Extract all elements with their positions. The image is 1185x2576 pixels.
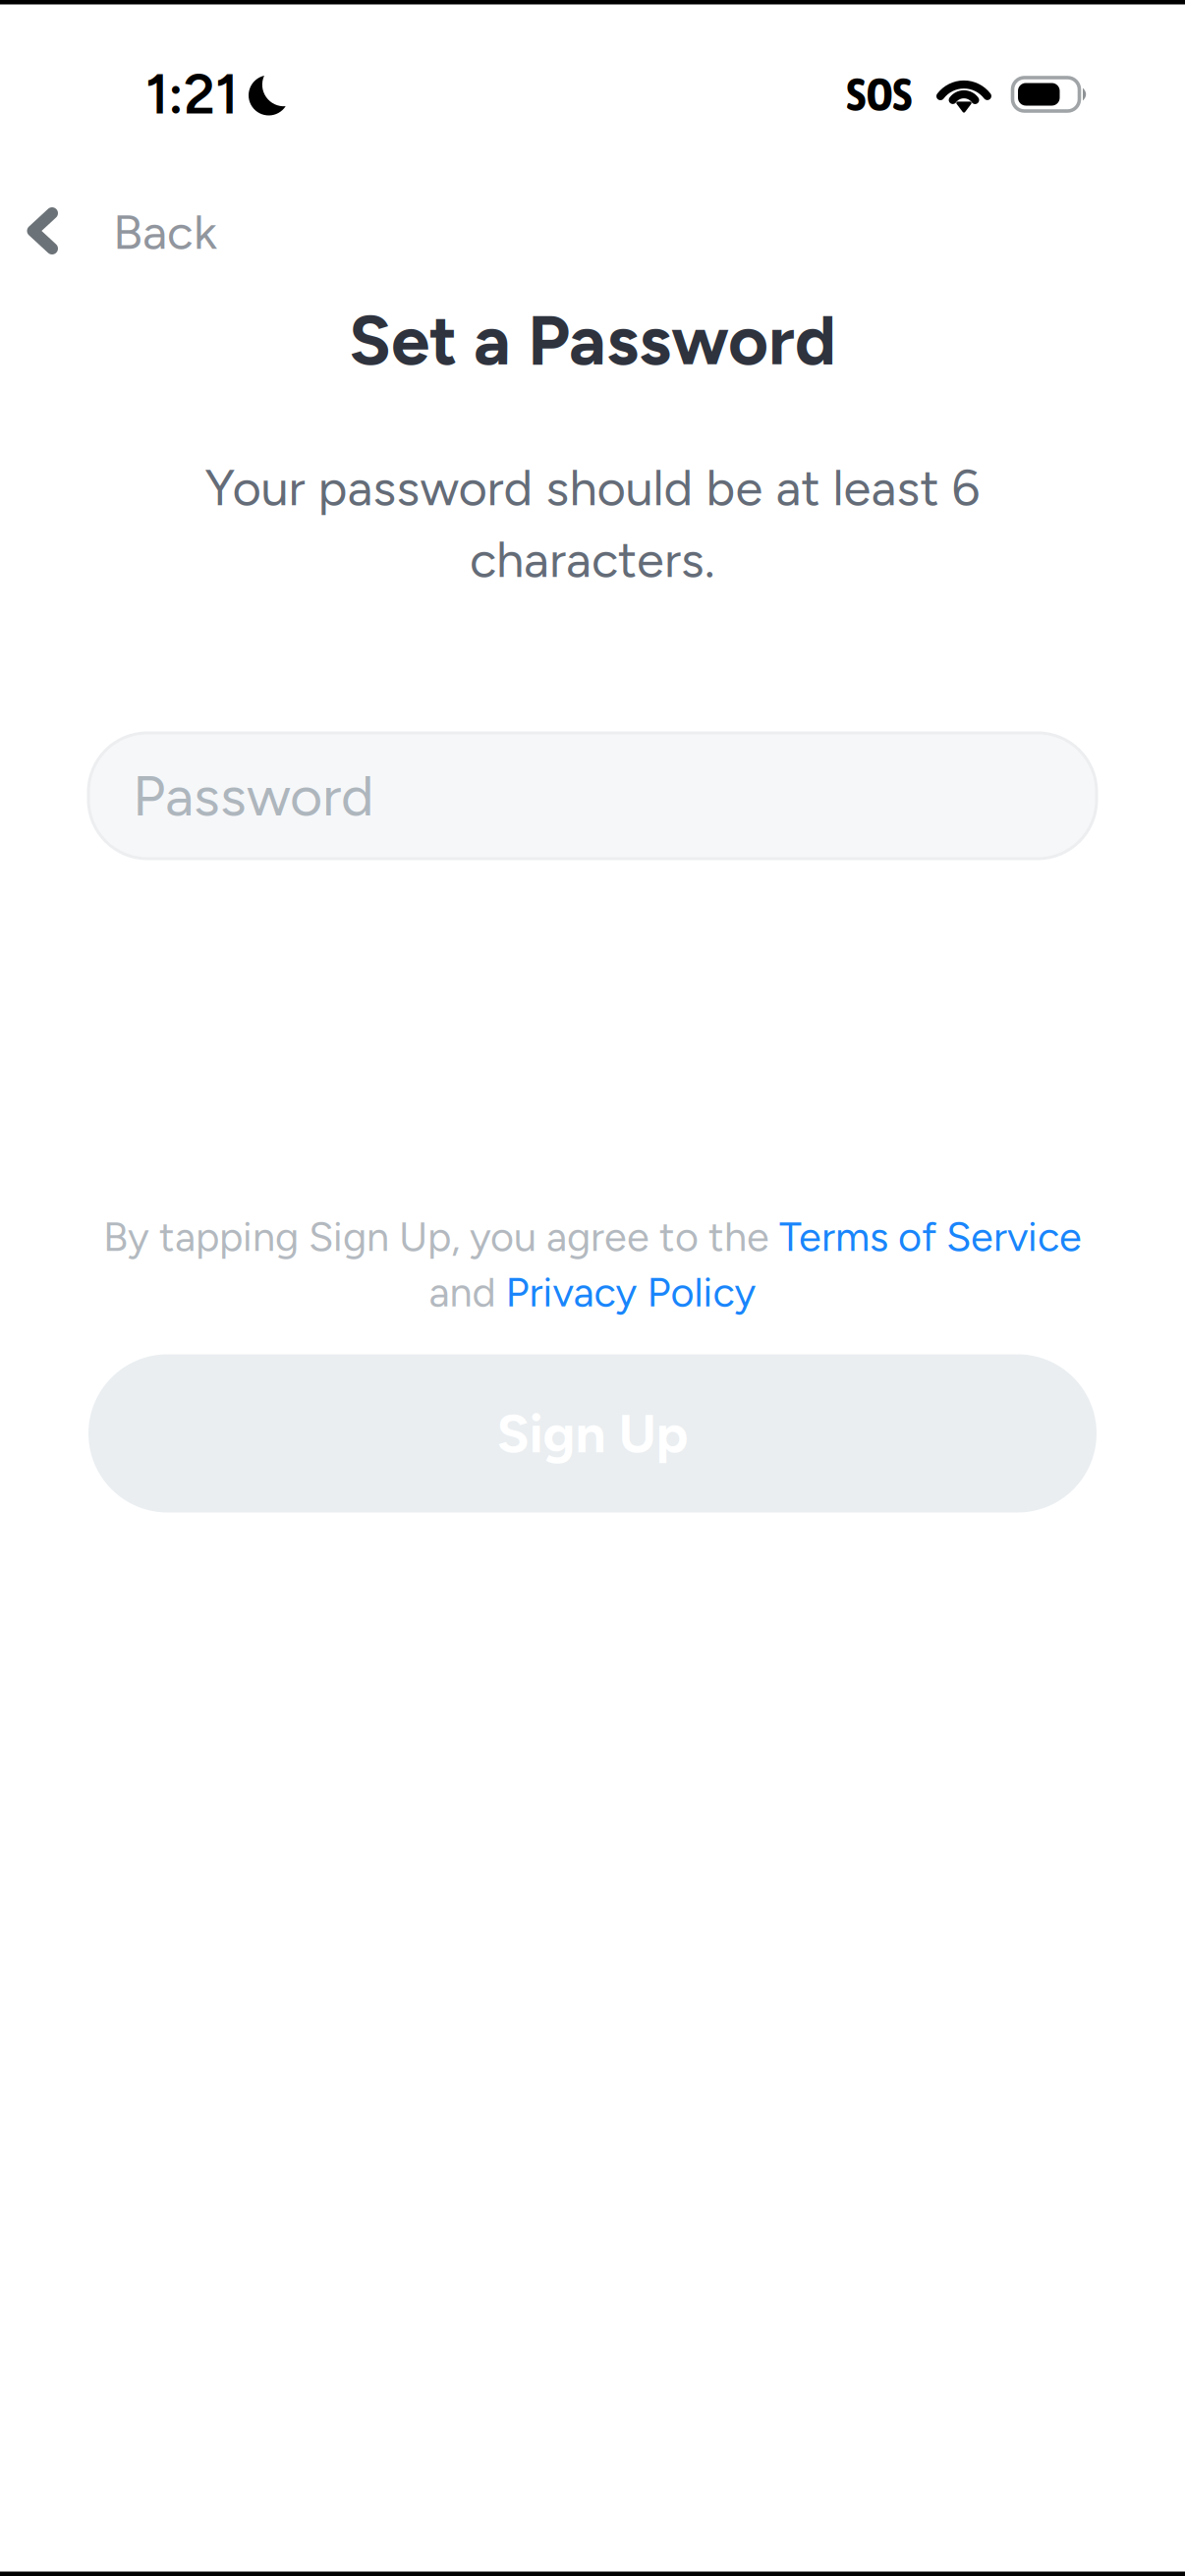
button[interactable]: Back <box>0 177 350 287</box>
staticText: Sign Up <box>497 1401 688 1466</box>
staticText: characters. <box>470 530 715 589</box>
staticText: Back <box>113 203 217 261</box>
staticText: Your password should be at least 6 <box>205 458 980 518</box>
button[interactable]: Password <box>88 733 1097 859</box>
staticText: 1:21 <box>145 61 238 127</box>
staticText: By tapping Sign Up, you agree to the <box>103 1212 779 1261</box>
button[interactable]: Sign Up <box>88 1354 1097 1512</box>
staticText: Set a Password <box>349 298 836 382</box>
staticText: Password <box>133 762 374 830</box>
staticText: Privacy Policy <box>506 1268 756 1317</box>
button[interactable]: Terms of Service <box>779 1212 1082 1261</box>
staticText: Terms of Service <box>779 1212 1082 1261</box>
staticText: SOS <box>846 68 912 121</box>
staticText: and <box>429 1268 506 1317</box>
button[interactable]: Privacy Policy <box>506 1268 756 1317</box>
